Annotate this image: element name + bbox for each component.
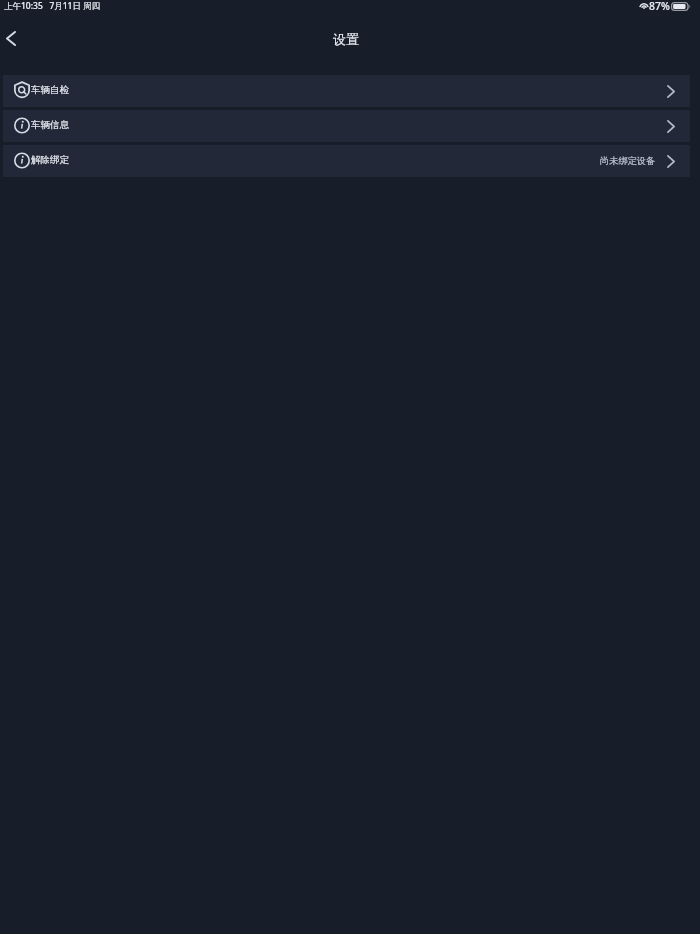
button[interactable]: 解除绑定 (3, 145, 690, 177)
button[interactable]: Back (0, 26, 23, 50)
staticText: 设置 (333, 31, 359, 47)
staticText: 车辆信息 (31, 119, 69, 131)
staticText: 87% (649, 0, 670, 13)
staticText: 上午10:35 7月11日 周四 (4, 0, 101, 12)
staticText: 车辆自检 (31, 84, 69, 96)
staticText: 解除绑定 (31, 154, 69, 166)
staticText: 尚未绑定设备 (600, 155, 656, 167)
button[interactable]: 车辆信息 (3, 110, 690, 142)
button[interactable]: 车辆自检 (3, 75, 690, 107)
